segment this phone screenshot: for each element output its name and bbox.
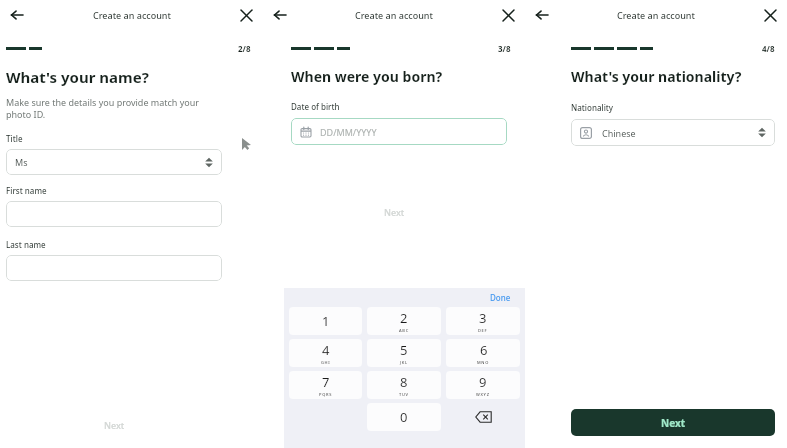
button[interactable]: 8 bbox=[367, 371, 441, 399]
staticText: Next bbox=[661, 416, 686, 430]
staticText: 3 bbox=[479, 309, 487, 327]
staticText: 0 bbox=[400, 408, 408, 426]
staticText: Next bbox=[104, 419, 125, 431]
staticText: TUV bbox=[399, 392, 409, 397]
staticText: 1 bbox=[322, 312, 330, 330]
staticText: 9 bbox=[479, 373, 487, 391]
staticText: ABC bbox=[399, 328, 409, 333]
staticText: Create an account bbox=[355, 9, 433, 21]
button[interactable]: Close bbox=[759, 4, 781, 26]
button[interactable]: Back bbox=[269, 4, 291, 26]
staticText: 2 bbox=[400, 309, 408, 327]
button[interactable]: 1 bbox=[289, 307, 362, 335]
button[interactable]: Next bbox=[571, 409, 775, 436]
button[interactable]: Close bbox=[235, 4, 257, 26]
staticText: What's your nationality? bbox=[571, 67, 742, 86]
button[interactable]: 6 bbox=[446, 339, 520, 367]
button[interactable] bbox=[6, 201, 222, 227]
staticText: 3/8 bbox=[498, 43, 511, 54]
staticText: DEF bbox=[478, 328, 488, 333]
button[interactable]: Back bbox=[6, 4, 28, 26]
button[interactable]: Next bbox=[374, 203, 415, 221]
staticText: 5 bbox=[400, 341, 408, 359]
staticText: Make sure the details you provide match … bbox=[6, 96, 200, 120]
staticText: GHI bbox=[321, 360, 331, 365]
button[interactable]: 7 bbox=[289, 371, 362, 399]
button[interactable]: Delete bbox=[446, 402, 520, 432]
staticText: Ms bbox=[15, 156, 28, 168]
button[interactable]: 2 bbox=[367, 307, 441, 335]
staticText: Create an account bbox=[93, 9, 171, 21]
staticText: 6 bbox=[480, 341, 488, 359]
staticText: When were you born? bbox=[291, 67, 443, 86]
staticText: Create an account bbox=[617, 9, 695, 21]
staticText: Last name bbox=[6, 239, 46, 250]
button[interactable]: 4 bbox=[289, 339, 362, 367]
button[interactable]: 3 bbox=[446, 307, 520, 335]
staticText: First name bbox=[6, 185, 47, 196]
button[interactable]: DD/MM/YYYY bbox=[291, 118, 507, 145]
button[interactable]: 0 bbox=[367, 403, 441, 431]
staticText: MNO bbox=[477, 360, 490, 365]
staticText: Done bbox=[490, 292, 511, 303]
button[interactable]: Back bbox=[531, 4, 553, 26]
staticText: 8 bbox=[400, 373, 408, 391]
staticText: Title bbox=[6, 133, 23, 144]
staticText: What's your name? bbox=[6, 67, 149, 87]
staticText: WXYZ bbox=[476, 392, 490, 397]
button[interactable]: 5 bbox=[367, 339, 441, 367]
staticText: Chinese bbox=[602, 127, 636, 139]
button[interactable]: Close bbox=[497, 4, 519, 26]
staticText: Next bbox=[384, 206, 405, 218]
staticText: 7 bbox=[322, 373, 330, 391]
staticText: PQRS bbox=[319, 392, 333, 397]
staticText: Date of birth bbox=[291, 101, 340, 112]
button[interactable]: Chinese bbox=[571, 119, 775, 146]
staticText: 4 bbox=[322, 341, 330, 359]
button[interactable]: Next bbox=[94, 416, 135, 434]
staticText: 4/8 bbox=[762, 43, 775, 54]
staticText: Nationality bbox=[571, 102, 614, 113]
button[interactable]: 9 bbox=[446, 371, 520, 399]
button[interactable] bbox=[6, 255, 222, 281]
staticText: JKL bbox=[400, 360, 408, 365]
button[interactable]: Ms bbox=[6, 149, 222, 175]
staticText: 2/8 bbox=[238, 43, 251, 54]
staticText: DD/MM/YYYY bbox=[320, 126, 377, 138]
button[interactable]: Done bbox=[490, 292, 511, 303]
